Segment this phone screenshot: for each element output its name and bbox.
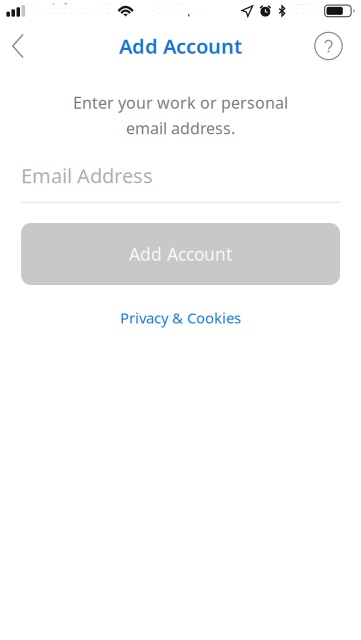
staticText: email address. xyxy=(126,117,235,139)
button[interactable]: Help xyxy=(313,24,344,68)
button[interactable]: Add Account xyxy=(21,223,340,285)
staticText: 55% xyxy=(293,0,320,17)
staticText: 3:46 pm xyxy=(156,0,207,17)
button[interactable]: Back xyxy=(0,24,36,68)
staticText: Privacy & Cookies xyxy=(120,308,241,327)
button[interactable]: Privacy & Cookies xyxy=(108,302,253,333)
staticText: Add Account xyxy=(119,33,242,59)
staticText: Vodafone AU xyxy=(31,0,113,17)
staticText: Enter your work or personal xyxy=(73,92,288,113)
staticText: Email Address xyxy=(21,162,153,189)
staticText: Add Account xyxy=(129,242,232,265)
